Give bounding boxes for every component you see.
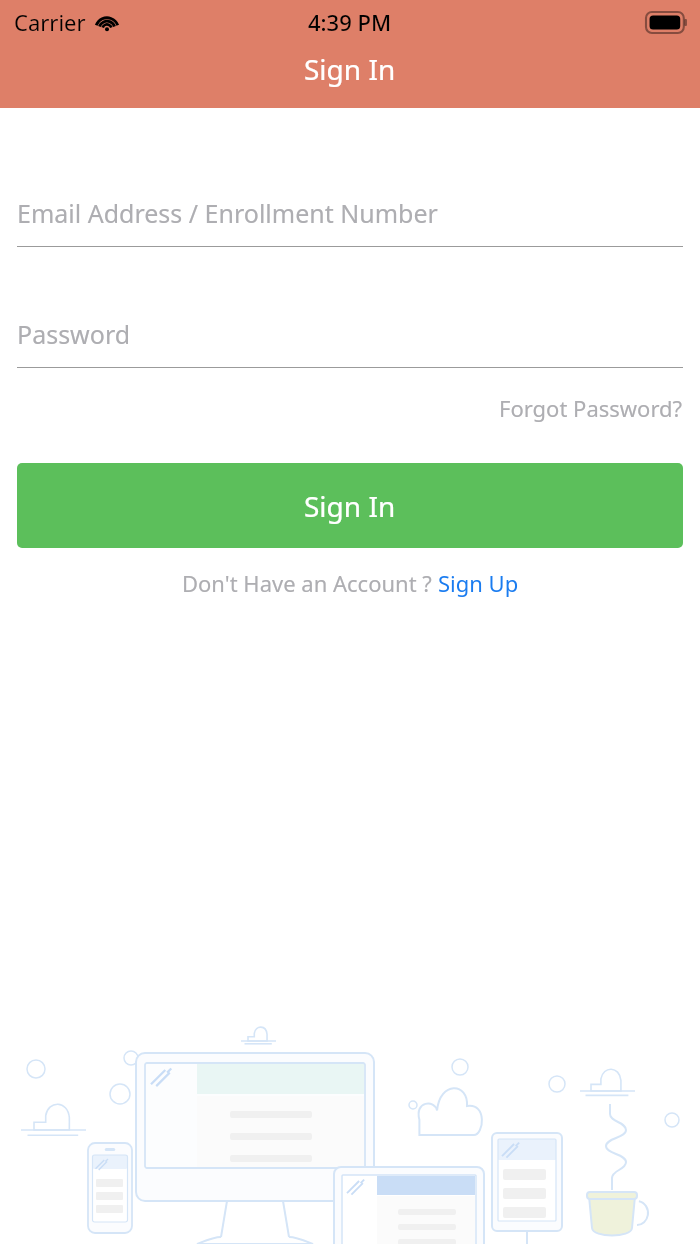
button[interactable]: Password bbox=[17, 317, 683, 368]
staticText: Email Address / Enrollment Number bbox=[17, 196, 438, 230]
staticText: Sign In bbox=[304, 487, 396, 525]
staticText: 4:39 PM bbox=[308, 7, 392, 37]
other: Battery full bbox=[646, 12, 688, 33]
button[interactable]: Email Address / Enrollment Number bbox=[17, 196, 683, 247]
button[interactable]: Forgot Password? bbox=[17, 388, 683, 428]
staticText: Don't Have an Account ? bbox=[182, 568, 438, 598]
button[interactable]: Sign Up bbox=[438, 568, 519, 598]
other: Wi-Fi bbox=[94, 12, 120, 32]
staticText: Carrier bbox=[14, 7, 86, 37]
staticText: Sign Up bbox=[438, 568, 519, 598]
staticText: Forgot Password? bbox=[499, 393, 683, 423]
staticText: Sign In bbox=[304, 50, 396, 88]
staticText: Password bbox=[17, 317, 131, 351]
button[interactable]: Sign In bbox=[17, 463, 683, 548]
